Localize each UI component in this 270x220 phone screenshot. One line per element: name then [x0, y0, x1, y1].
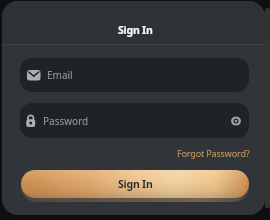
staticText: Password	[43, 114, 89, 128]
staticText: Forgot Password?	[177, 147, 250, 159]
staticText: Sign In	[118, 23, 153, 37]
staticText: Sign In	[118, 177, 153, 191]
staticText: Email	[47, 68, 73, 82]
